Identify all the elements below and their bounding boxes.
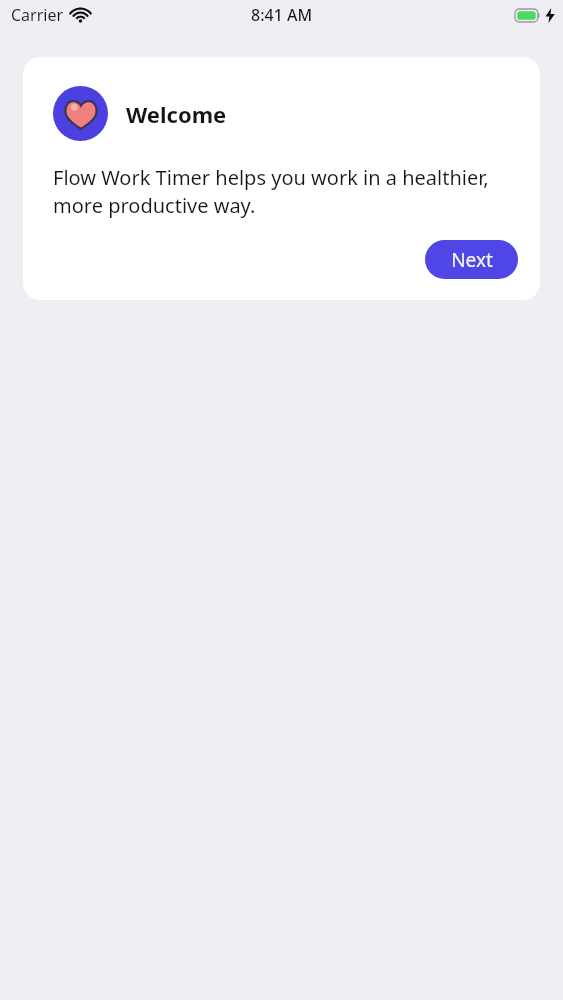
staticText: Next [451, 247, 493, 273]
button[interactable]: Next [425, 240, 518, 279]
staticText: 8:41 AM [251, 4, 313, 26]
staticText: Flow Work Timer helps you work in a heal… [53, 164, 518, 219]
other: Heart [64, 97, 98, 131]
staticText: Carrier [11, 4, 64, 26]
staticText: Welcome [126, 99, 227, 129]
